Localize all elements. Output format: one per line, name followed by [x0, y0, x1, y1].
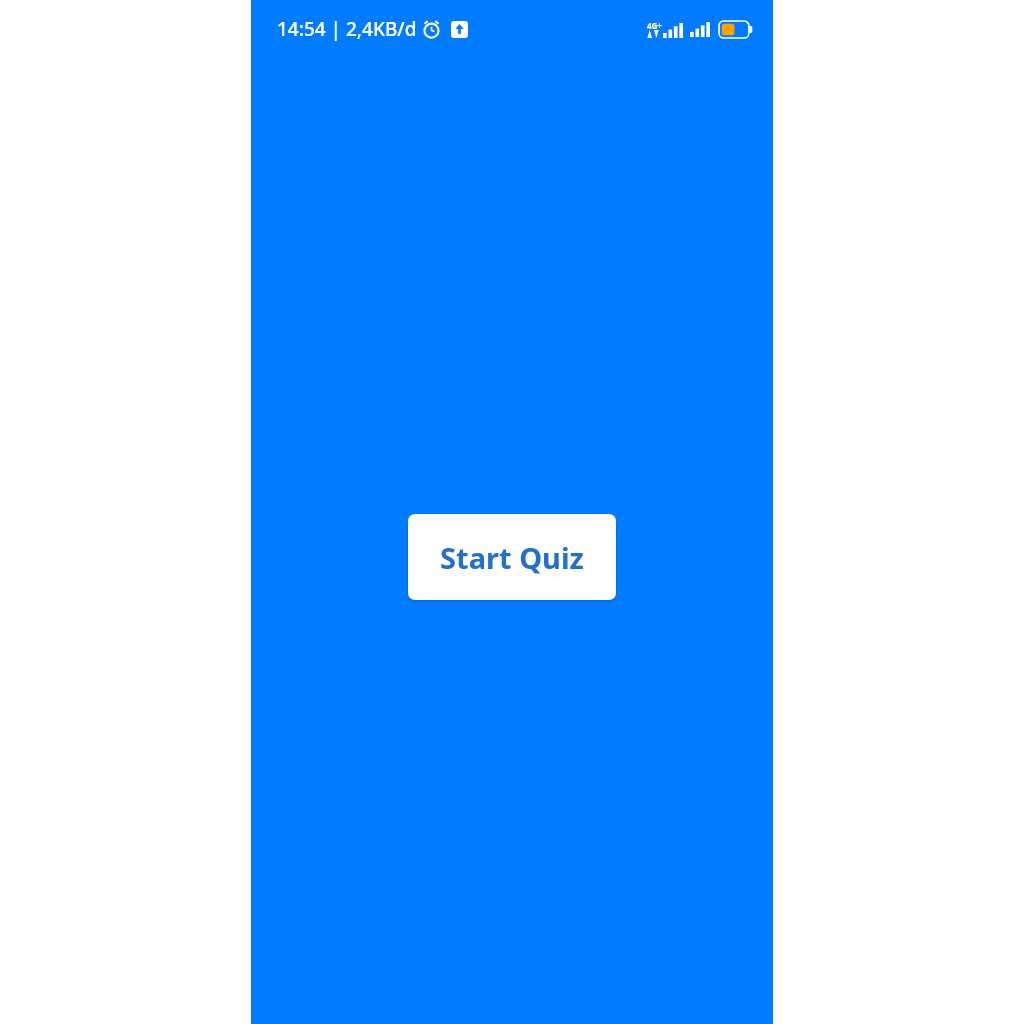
- staticText: 14:54 | 2,4KB/d: [277, 16, 417, 42]
- button[interactable]: Start Quiz: [408, 514, 616, 600]
- staticText: 4G+: [647, 20, 662, 31]
- staticText: Start Quiz: [440, 538, 584, 577]
